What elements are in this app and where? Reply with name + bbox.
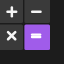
- button[interactable]: Equals: [24, 24, 64, 64]
- button[interactable]: Multiply: [0, 24, 23, 64]
- button[interactable]: Plus: [0, 0, 23, 23]
- button[interactable]: Minus: [24, 0, 64, 23]
